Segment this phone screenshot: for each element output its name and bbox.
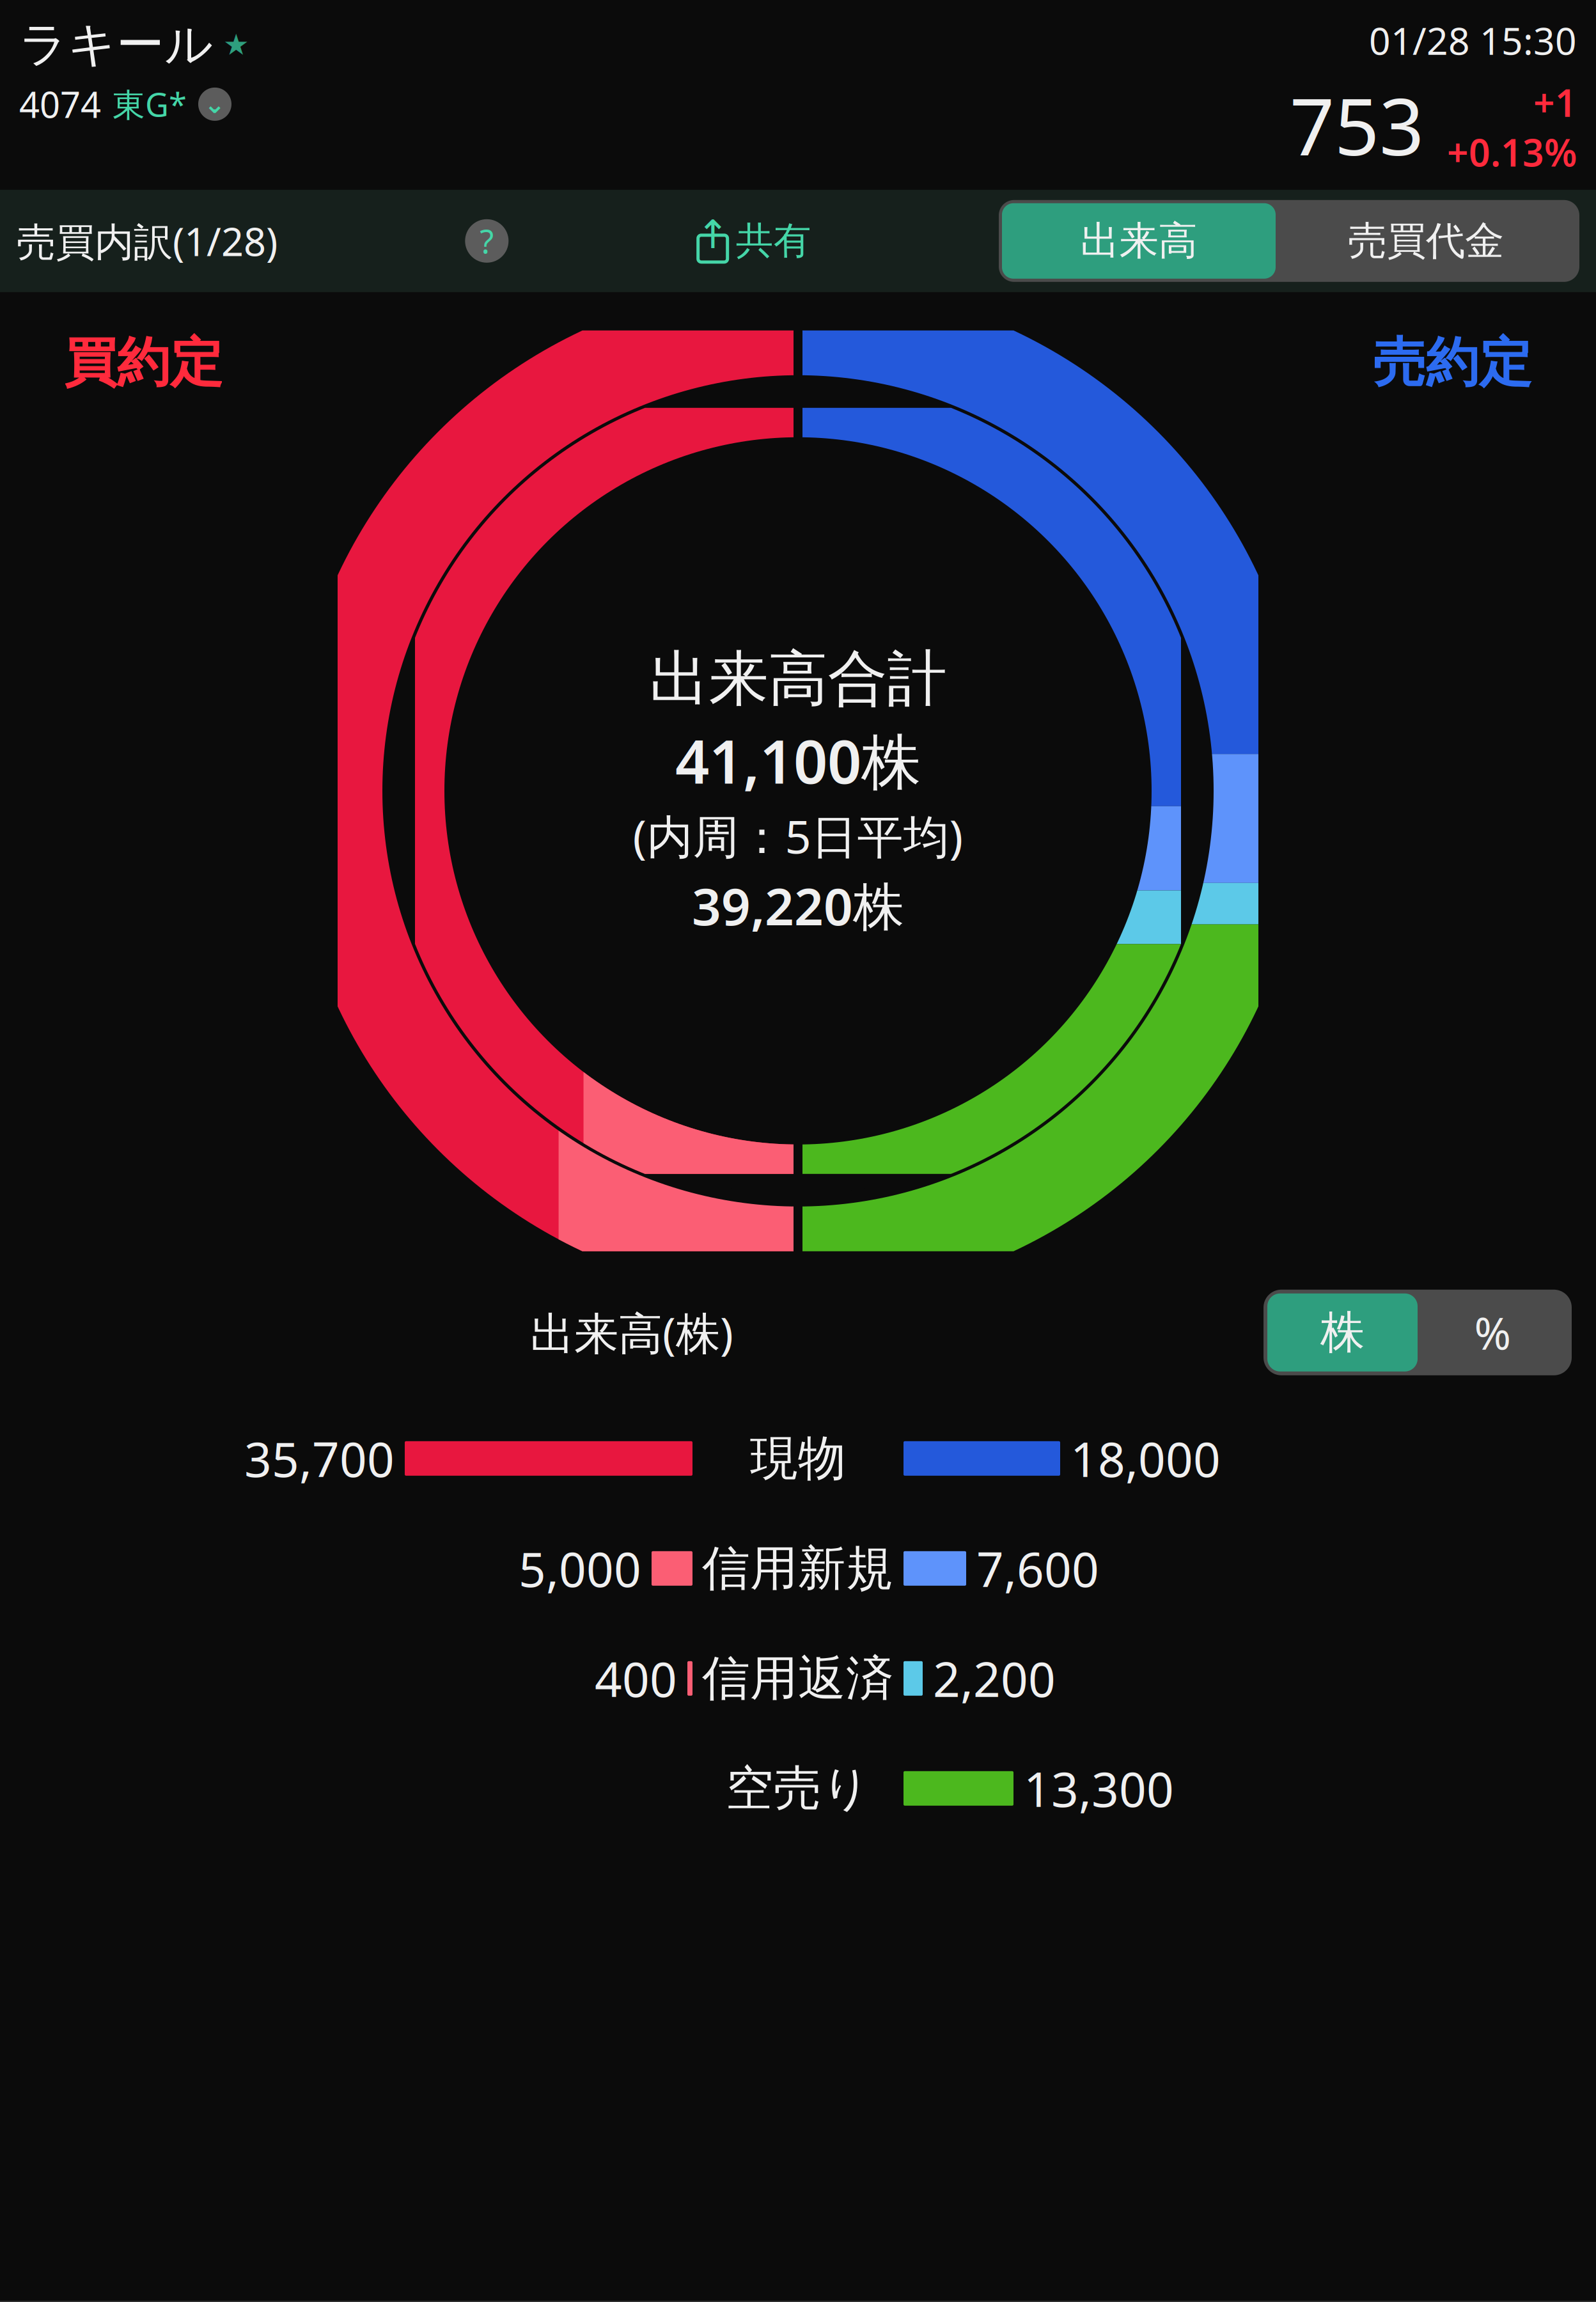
staticText: +1 <box>1533 77 1577 127</box>
staticText: 共有 <box>736 218 811 264</box>
staticText: 出来高 <box>1080 217 1197 265</box>
staticText: % <box>1474 1303 1511 1362</box>
staticText: 売買内訳(1/28) <box>17 215 278 267</box>
staticText: ? <box>480 219 494 262</box>
button[interactable]: 銘柄メニュー <box>198 88 231 121</box>
staticText: +0.13% <box>1447 127 1577 177</box>
staticText: 空売り <box>726 1759 870 1818</box>
button[interactable]: ヘルプ <box>465 219 509 263</box>
button[interactable]: 株 <box>1267 1293 1418 1371</box>
staticText: 信用返済 <box>702 1649 894 1708</box>
staticText: 5,000 <box>519 1537 641 1600</box>
staticText: 出来高合計 <box>649 642 947 716</box>
staticText: 出来高(株) <box>530 1303 733 1362</box>
staticText: ★ <box>223 28 249 61</box>
staticText: 753 <box>1290 73 1424 177</box>
staticText: 41,100株 <box>675 721 921 800</box>
staticText: ⌄ <box>204 90 226 119</box>
staticText: ラキール <box>19 15 213 74</box>
staticText: 7,600 <box>976 1537 1099 1600</box>
staticText: 18,000 <box>1070 1427 1221 1490</box>
button[interactable]: 売買代金 <box>1276 203 1576 279</box>
staticText: 買約定 <box>64 330 223 395</box>
staticText: 東G* <box>113 83 187 126</box>
staticText: 35,700 <box>244 1427 395 1490</box>
staticText: 株 <box>1320 1305 1365 1360</box>
staticText: 現物 <box>750 1429 846 1488</box>
button[interactable]: % <box>1418 1293 1568 1371</box>
staticText: ↑ <box>696 212 729 257</box>
staticText: 売買代金 <box>1348 217 1504 265</box>
staticText: 01/28 15:30 <box>1369 15 1577 65</box>
staticText: 売約定 <box>1373 330 1532 395</box>
staticText: 39,220株 <box>692 871 904 939</box>
staticText: (内周：5日平均) <box>633 805 963 866</box>
staticText: 2,200 <box>933 1647 1056 1710</box>
staticText: 信用新規 <box>702 1539 894 1598</box>
button[interactable]: 出来高 <box>1002 203 1276 279</box>
staticText: 400 <box>595 1647 677 1710</box>
button[interactable]: ↑ <box>696 218 811 264</box>
staticText: 13,300 <box>1024 1757 1174 1820</box>
staticText: 4074 <box>19 80 101 128</box>
